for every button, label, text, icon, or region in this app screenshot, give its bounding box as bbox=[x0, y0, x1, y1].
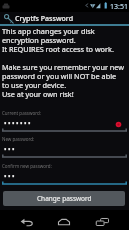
staticText: Change password bbox=[37, 194, 92, 203]
button[interactable]: New password: bbox=[2, 134, 127, 159]
button[interactable]: Confirm new password: bbox=[2, 161, 127, 186]
staticText: 13:51 bbox=[110, 2, 128, 12]
button[interactable]: Current password: bbox=[2, 108, 127, 133]
staticText: Cryptfs Password bbox=[15, 14, 74, 24]
staticText: This app changes your disk encryption pa… bbox=[2, 26, 125, 99]
button[interactable]: Cryptfs Password bbox=[0, 12, 129, 24]
staticText: New password: bbox=[2, 136, 35, 142]
button[interactable]: Recent apps bbox=[89, 212, 115, 230]
button[interactable]: Home bbox=[51, 212, 77, 230]
staticText: Confirm new password: bbox=[2, 163, 52, 169]
staticText: Current password: bbox=[2, 110, 41, 116]
button[interactable]: Change password bbox=[3, 191, 125, 206]
button[interactable]: Back bbox=[13, 212, 39, 230]
